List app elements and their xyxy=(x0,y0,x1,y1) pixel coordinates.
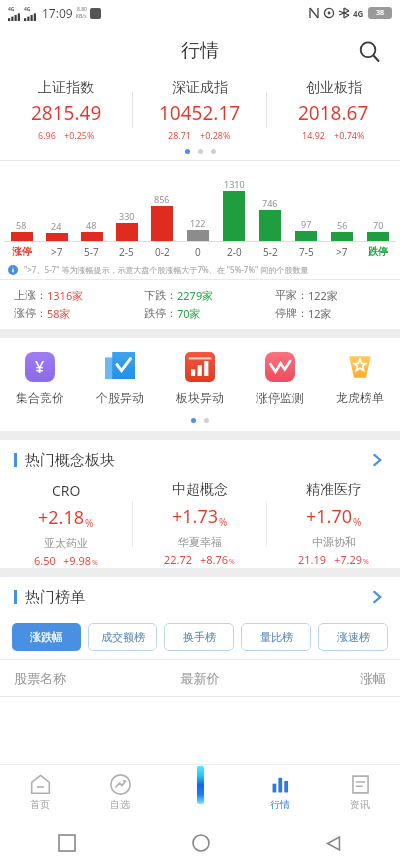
staticText: 平家： xyxy=(275,288,308,302)
staticText: +9.98 xyxy=(63,553,92,568)
staticText: 10452.17 xyxy=(159,100,241,126)
staticText: 4G xyxy=(8,6,15,13)
staticText: % xyxy=(229,557,235,567)
staticText: 精准医疗 xyxy=(306,481,362,499)
staticText: 涨停监测 xyxy=(256,390,304,405)
button[interactable]: 板块异动 xyxy=(160,350,240,405)
staticText: 856 xyxy=(154,193,170,205)
button[interactable]: 换手榜 xyxy=(164,623,234,651)
staticText: 4G xyxy=(353,8,364,19)
staticText: 5-2 xyxy=(263,245,278,259)
staticText: 龙虎榜单 xyxy=(336,390,384,405)
button[interactable]: 上证指数 xyxy=(0,76,132,144)
staticText: 122 xyxy=(190,217,206,229)
button[interactable]: 成交额榜 xyxy=(88,623,157,651)
button[interactable]: 中超概念 xyxy=(133,480,266,568)
staticText: % xyxy=(219,515,228,529)
staticText: 0-2 xyxy=(155,245,170,259)
staticText: 58 xyxy=(16,219,27,231)
staticText: >7 xyxy=(51,245,63,259)
staticText: 行情 xyxy=(270,798,290,811)
staticText: 22.72 xyxy=(164,552,193,567)
staticText: 1310 xyxy=(224,178,245,190)
button[interactable]: 自选 xyxy=(80,764,160,820)
button[interactable]: ¥ xyxy=(0,350,80,405)
staticText: 17:09 xyxy=(42,5,73,21)
staticText: 自选 xyxy=(110,798,130,811)
staticText: KB/s xyxy=(76,13,87,20)
staticText: 亚太药业 xyxy=(44,536,88,550)
staticText: 2018.67 xyxy=(298,100,369,126)
button[interactable]: 涨停监测 xyxy=(240,350,320,405)
staticText: 2-0 xyxy=(227,245,242,259)
staticText: 12家 xyxy=(308,306,332,321)
other: Home xyxy=(192,834,210,852)
other: Back xyxy=(325,835,342,852)
button[interactable]: 行情 xyxy=(240,764,320,820)
button[interactable]: CRO xyxy=(0,480,132,568)
staticText: 2279家 xyxy=(177,288,214,303)
staticText: 中超概念 xyxy=(172,481,228,499)
staticText: CRO xyxy=(52,481,81,500)
button[interactable]: 涨速榜 xyxy=(318,623,388,651)
staticText: 涨速榜 xyxy=(337,630,370,644)
staticText: 涨幅 xyxy=(262,670,386,686)
staticText: 0 xyxy=(195,245,201,259)
button[interactable]: 首页 xyxy=(0,764,80,820)
staticText: 板块异动 xyxy=(176,390,224,405)
staticText: 122家 xyxy=(308,288,338,303)
staticText: 最新价 xyxy=(138,670,262,686)
staticText: +1.73 xyxy=(172,504,219,529)
staticText: 70 xyxy=(373,219,384,231)
staticText: 1316家 xyxy=(47,288,84,303)
staticText: 个股异动 xyxy=(96,390,144,405)
staticText: 集合竞价 xyxy=(16,390,64,405)
staticText: 深证成指 xyxy=(172,79,228,97)
staticText: 28.71 xyxy=(168,129,192,141)
staticText: 97 xyxy=(301,218,312,230)
staticText: 涨跌幅 xyxy=(30,630,63,644)
staticText: 上证指数 xyxy=(38,79,94,97)
staticText: 华夏幸福 xyxy=(178,535,222,549)
staticText: 2815.49 xyxy=(31,100,102,126)
staticText: +1.70 xyxy=(306,504,353,529)
staticText: 下跌： xyxy=(144,288,177,302)
staticText: 6.96 xyxy=(38,129,56,141)
button[interactable]: 深证成指 xyxy=(133,76,266,144)
staticText: 48 xyxy=(86,219,97,231)
staticText: 5-7 xyxy=(84,245,99,259)
staticText: ">7、5-7" 等为涨幅提示，示意大盘个股涨幅大于7%、在 "5%-7%" 间… xyxy=(24,264,309,275)
staticText: 成交额榜 xyxy=(101,630,145,644)
staticText: % xyxy=(85,516,94,530)
staticText: 21.19 xyxy=(298,552,327,567)
staticText: 上涨： xyxy=(14,288,47,302)
staticText: 24 xyxy=(51,220,62,232)
staticText: 14.92 xyxy=(302,129,326,141)
staticText: 跌停： xyxy=(144,306,177,320)
button[interactable]: 个股异动 xyxy=(80,350,160,405)
staticText: +0.74% xyxy=(334,129,365,141)
button[interactable]: 热门榜单 xyxy=(0,577,400,617)
button[interactable]: Trade xyxy=(197,766,204,804)
staticText: 70家 xyxy=(177,306,201,321)
staticText: 首页 xyxy=(30,798,50,811)
staticText: 330 xyxy=(119,210,135,222)
staticText: ¥ xyxy=(35,356,45,378)
button[interactable]: 精准医疗 xyxy=(267,480,400,568)
button[interactable]: 热门概念板块 xyxy=(0,440,400,480)
staticText: 热门榜单 xyxy=(25,588,85,607)
button[interactable]: Search xyxy=(352,34,386,68)
staticText: 2-5 xyxy=(119,245,134,259)
staticText: +0.25% xyxy=(64,129,95,141)
staticText: 58家 xyxy=(47,306,71,321)
staticText: 创业板指 xyxy=(306,79,362,97)
button[interactable]: 涨跌幅 xyxy=(12,623,81,651)
staticText: 4G xyxy=(24,6,31,13)
staticText: 热门概念板块 xyxy=(25,451,115,470)
button[interactable]: 龙虎榜单 xyxy=(320,350,400,405)
staticText: 中源协和 xyxy=(312,535,356,549)
button[interactable]: 创业板指 xyxy=(267,76,400,144)
button[interactable]: 量比榜 xyxy=(241,623,311,651)
staticText: +8.76 xyxy=(200,552,229,567)
button[interactable]: 资讯 xyxy=(320,764,400,820)
